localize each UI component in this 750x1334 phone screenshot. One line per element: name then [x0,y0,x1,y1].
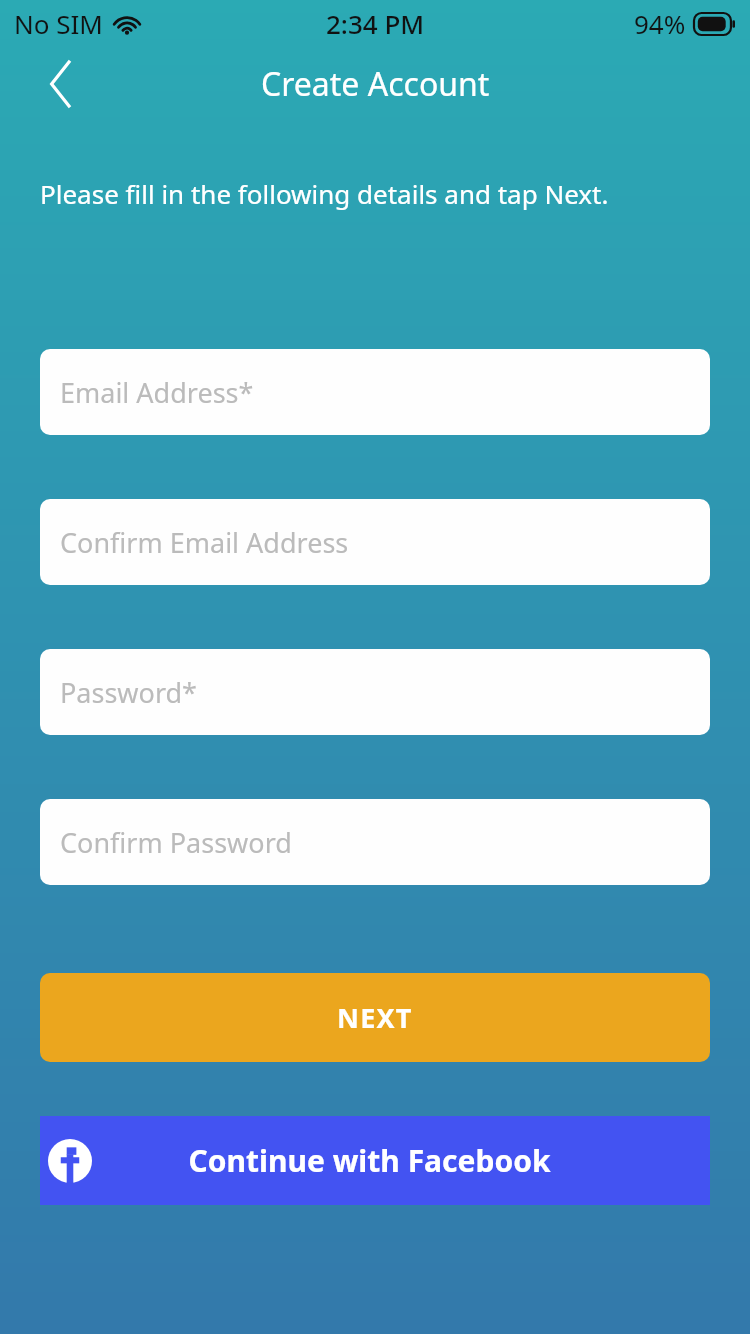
staticText: Email Address* [60,374,254,411]
staticText: Continue with Facebook [188,1140,551,1181]
staticText: Please fill in the following details and… [40,176,609,211]
staticText: No SIM [14,6,103,41]
staticText: Password* [60,674,197,711]
staticText: Confirm Email Address [60,524,349,561]
button[interactable]: Continue with Facebook [40,1116,710,1205]
button[interactable]: Email Address* [40,349,710,435]
button[interactable]: Back [26,50,94,118]
button[interactable]: NEXT [40,973,710,1062]
button[interactable]: Password* [40,649,710,735]
button[interactable]: Confirm Password [40,799,710,885]
staticText: Confirm Password [60,824,292,861]
staticText: 94% [634,6,686,41]
button[interactable]: Confirm Email Address [40,499,710,585]
staticText: Create Account [261,62,490,106]
staticText: NEXT [337,999,413,1036]
staticText: 2:34 PM [326,6,425,41]
